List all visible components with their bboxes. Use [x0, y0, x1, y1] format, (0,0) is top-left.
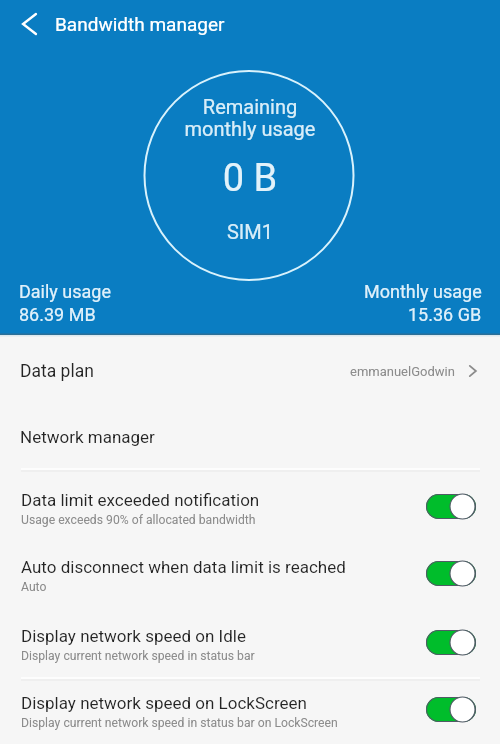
staticText: emmanuelGodwin — [350, 364, 455, 379]
staticText: Auto disconnect when data limit is reach… — [21, 557, 346, 577]
staticText: Display network speed on LockScreen — [21, 693, 307, 713]
staticText: Display current network speed in status … — [21, 716, 338, 730]
staticText: Network manager — [20, 427, 155, 447]
button[interactable]: Display network speed on LockScreen — [0, 678, 500, 744]
staticText: Auto — [21, 580, 47, 594]
button[interactable]: Data plan — [0, 334, 500, 404]
staticText: Usage exceeds 90% of allocated bandwidth — [21, 513, 256, 527]
button[interactable]: Display network speed on Idle — [0, 610, 500, 678]
staticText: Bandwidth manager — [55, 13, 225, 35]
button[interactable]: Toggle switch, on — [426, 493, 476, 520]
staticText: 86.39 MB — [19, 304, 96, 325]
button[interactable]: Data limit exceeded notification — [0, 474, 500, 542]
staticText: Remaining monthly usage — [0, 95, 500, 141]
staticText: SIM1 — [0, 220, 500, 243]
staticText: Data plan — [20, 361, 94, 382]
staticText: 15.36 GB — [408, 304, 482, 325]
button[interactable]: Toggle switch, on — [426, 696, 476, 723]
button[interactable]: Toggle switch, on — [426, 560, 476, 587]
button[interactable]: Auto disconnect when data limit is reach… — [0, 541, 500, 609]
staticText: 0 B — [0, 156, 500, 201]
staticText: Daily usage — [19, 281, 111, 302]
button[interactable]: Toggle switch, on — [426, 629, 476, 656]
staticText: Display network speed on Idle — [21, 626, 246, 646]
staticText: Data limit exceeded notification — [21, 490, 260, 510]
button[interactable]: Navigate back — [0, 0, 52, 48]
staticText: Display current network speed in status … — [21, 649, 255, 663]
staticText: Monthly usage — [364, 281, 482, 302]
